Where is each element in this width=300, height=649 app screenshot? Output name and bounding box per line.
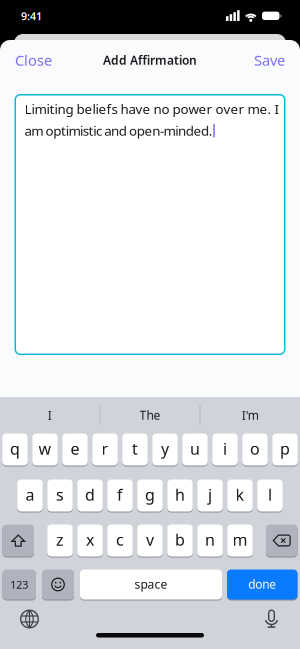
button[interactable]: I'm: [200, 398, 300, 431]
button[interactable]: Shift: [2, 524, 34, 557]
button[interactable]: l: [257, 479, 283, 512]
staticText: x: [86, 529, 94, 550]
staticText: i: [223, 438, 227, 459]
button[interactable]: d: [77, 479, 103, 512]
staticText: y: [161, 438, 169, 459]
staticText: r: [101, 438, 108, 459]
staticText: z: [56, 529, 64, 550]
staticText: s: [56, 484, 64, 505]
button[interactable]: m: [227, 524, 253, 557]
button[interactable]: p: [272, 433, 298, 466]
button[interactable]: Dictate: [263, 609, 280, 628]
staticText: Limiting beliefs have no power over me. …: [24, 100, 279, 118]
staticText: a: [25, 484, 34, 505]
button[interactable]: c: [107, 524, 133, 557]
staticText: Save: [254, 50, 285, 70]
staticText: The: [139, 407, 160, 423]
button[interactable]: x: [77, 524, 103, 557]
staticText: g: [145, 484, 155, 505]
staticText: t: [132, 438, 138, 459]
button[interactable]: f: [107, 479, 133, 512]
button[interactable]: w: [32, 433, 58, 466]
staticText: l: [268, 484, 272, 505]
staticText: q: [10, 438, 20, 459]
staticText: m: [232, 529, 247, 550]
staticText: j: [208, 484, 212, 505]
staticText: 9:41: [21, 9, 42, 23]
button[interactable]: n: [197, 524, 223, 557]
staticText: d: [85, 484, 95, 505]
button[interactable]: u: [182, 433, 208, 466]
staticText: am optimistic and open-minded.: [24, 122, 213, 139]
staticText: b: [175, 529, 185, 550]
staticText: I'm: [242, 407, 259, 423]
button[interactable]: r: [92, 433, 118, 466]
staticText: c: [116, 529, 124, 550]
staticText: v: [146, 529, 154, 550]
staticText: n: [205, 529, 215, 550]
button[interactable]: Numbers: [2, 569, 36, 600]
staticText: done: [248, 576, 276, 592]
staticText: 123: [10, 577, 28, 592]
button[interactable]: q: [2, 433, 28, 466]
staticText: w: [38, 438, 51, 459]
button[interactable]: z: [47, 524, 73, 557]
button[interactable]: e: [62, 433, 88, 466]
button[interactable]: h: [167, 479, 193, 512]
staticText: o: [250, 438, 260, 459]
staticText: p: [280, 438, 290, 459]
button[interactable]: t: [122, 433, 148, 466]
button[interactable]: j: [197, 479, 223, 512]
staticText: f: [117, 484, 123, 505]
button[interactable]: o: [242, 433, 268, 466]
button[interactable]: Delete: [266, 524, 297, 557]
button[interactable]: Close: [15, 50, 52, 70]
staticText: e: [70, 438, 79, 459]
button[interactable]: y: [152, 433, 178, 466]
button[interactable]: g: [137, 479, 163, 512]
button[interactable]: space: [80, 569, 222, 600]
staticText: Close: [15, 50, 52, 70]
staticText: space: [134, 576, 167, 592]
button[interactable]: i: [212, 433, 238, 466]
button[interactable]: Save: [254, 50, 285, 70]
button[interactable]: a: [17, 479, 43, 512]
button[interactable]: s: [47, 479, 73, 512]
staticText: u: [190, 438, 200, 459]
button[interactable]: b: [167, 524, 193, 557]
staticText: h: [175, 484, 185, 505]
button[interactable]: I: [0, 398, 99, 431]
staticText: k: [235, 484, 244, 505]
button[interactable]: v: [137, 524, 163, 557]
button[interactable]: done: [227, 569, 297, 600]
staticText: I: [48, 407, 52, 423]
button[interactable]: The: [100, 398, 199, 431]
staticText: Add Affirmation: [103, 52, 197, 68]
button[interactable]: Emoji: [42, 569, 74, 600]
button[interactable]: k: [227, 479, 253, 512]
button[interactable]: Next keyboard: [20, 609, 39, 628]
